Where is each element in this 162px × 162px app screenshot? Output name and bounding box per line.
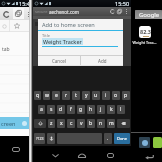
button[interactable]: Recent apps: [10, 143, 22, 155]
staticText: b: [89, 120, 93, 127]
button[interactable]: a: [38, 105, 45, 114]
button[interactable]: l: [117, 105, 125, 114]
button[interactable]: c: [67, 119, 75, 128]
staticText: Add to home screen: [42, 21, 95, 29]
button[interactable]: Back: [143, 152, 155, 162]
button[interactable]: o: [112, 91, 120, 100]
staticText: creen: [1, 120, 16, 127]
staticText: Add: [98, 58, 107, 64]
staticText: Weight Trac...: [132, 40, 157, 45]
button[interactable]: Tabs: [116, 8, 123, 15]
staticText: 15:50: [115, 0, 130, 7]
button[interactable]: n: [97, 119, 105, 128]
button[interactable]: x: [57, 119, 65, 128]
button[interactable]: Home: [76, 149, 88, 161]
button[interactable]: Tabs: [13, 8, 24, 19]
staticText: w: [45, 92, 49, 99]
button[interactable]: r: [62, 91, 70, 100]
button[interactable]: Add: [81, 56, 123, 65]
staticText: v: [80, 120, 83, 127]
button[interactable]: p: [122, 91, 130, 100]
staticText: aechenot.com: [49, 9, 79, 15]
button[interactable]: k: [107, 105, 115, 114]
button[interactable]: g: [77, 105, 85, 114]
button[interactable]: More options: [24, 9, 32, 19]
staticText: Done: [117, 136, 128, 141]
button[interactable]: Cancel: [38, 56, 80, 65]
button[interactable]: e: [52, 91, 60, 100]
staticText: t: [75, 92, 77, 99]
staticText: x: [60, 120, 63, 127]
button[interactable]: Messages: [153, 137, 162, 148]
staticText: n: [99, 120, 103, 127]
staticText: r: [65, 92, 68, 99]
button[interactable]: f: [67, 105, 75, 114]
staticText: j: [100, 106, 102, 113]
staticText: Cancel: [52, 58, 67, 64]
button[interactable]: w: [43, 91, 50, 100]
staticText: f: [70, 106, 72, 113]
button[interactable]: Done: [114, 133, 130, 144]
button[interactable]: v: [77, 119, 85, 128]
staticText: d: [59, 106, 63, 113]
button[interactable]: Refresh: [109, 8, 116, 15]
button[interactable]: h: [87, 105, 95, 114]
button[interactable]: t: [72, 91, 80, 100]
button[interactable]: Google: [135, 10, 162, 19]
staticText: h: [89, 106, 93, 113]
staticText: .: [107, 135, 109, 142]
button[interactable]: .: [104, 133, 112, 144]
staticText: o: [114, 92, 118, 99]
staticText: c: [70, 120, 73, 127]
button[interactable]: b: [87, 119, 95, 128]
staticText: z: [50, 120, 53, 127]
button[interactable]: q: [34, 91, 41, 100]
staticText: e: [55, 92, 58, 99]
staticText: 82.3: [140, 28, 151, 35]
button[interactable]: Browser: [139, 137, 150, 148]
staticText: k: [110, 106, 113, 113]
button[interactable]: m: [107, 119, 115, 128]
button[interactable]: tab: [0, 44, 32, 55]
staticText: p: [124, 92, 128, 99]
staticText: Google: [139, 11, 160, 19]
button[interactable]: d: [57, 105, 65, 114]
button[interactable]: Delete: [117, 119, 130, 128]
staticText: Weight Tracker: [43, 38, 82, 45]
button[interactable]: ?123: [34, 133, 45, 144]
button[interactable]: Refresh: [1, 9, 11, 19]
button[interactable]: 82.3: [139, 26, 151, 38]
button[interactable]: Back: [49, 149, 61, 161]
staticText: a: [40, 106, 43, 113]
staticText: q: [36, 92, 40, 99]
staticText: m: [109, 120, 114, 127]
button[interactable]: creen: [0, 117, 32, 129]
staticText: ?123: [36, 136, 44, 141]
button[interactable]: y: [82, 91, 90, 100]
staticText: u: [94, 92, 98, 99]
button[interactable]: Shift: [34, 119, 46, 128]
staticText: g: [79, 106, 83, 113]
staticText: l: [120, 106, 122, 113]
staticText: s: [50, 106, 53, 113]
button[interactable]: j: [97, 105, 105, 114]
staticText: y: [85, 92, 88, 99]
staticText: 15:49: [19, 0, 31, 7]
button[interactable]: z: [48, 119, 55, 128]
button[interactable]: Voice input: [47, 133, 55, 144]
staticText: Title: [42, 33, 50, 38]
staticText: i: [105, 92, 107, 99]
button[interactable]: More options: [123, 8, 130, 15]
button[interactable]: u: [92, 91, 100, 100]
staticText: secure: [35, 9, 48, 14]
button[interactable]: i: [102, 91, 110, 100]
button[interactable]: s: [47, 105, 55, 114]
staticText: tab: [2, 46, 10, 53]
button[interactable]: Recent apps: [104, 149, 116, 161]
